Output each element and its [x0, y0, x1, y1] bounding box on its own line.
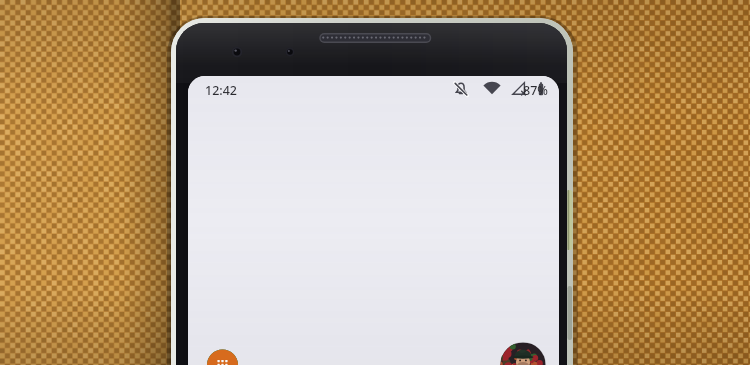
staticText: 12:42	[205, 82, 238, 99]
staticText: 87%	[523, 82, 548, 99]
